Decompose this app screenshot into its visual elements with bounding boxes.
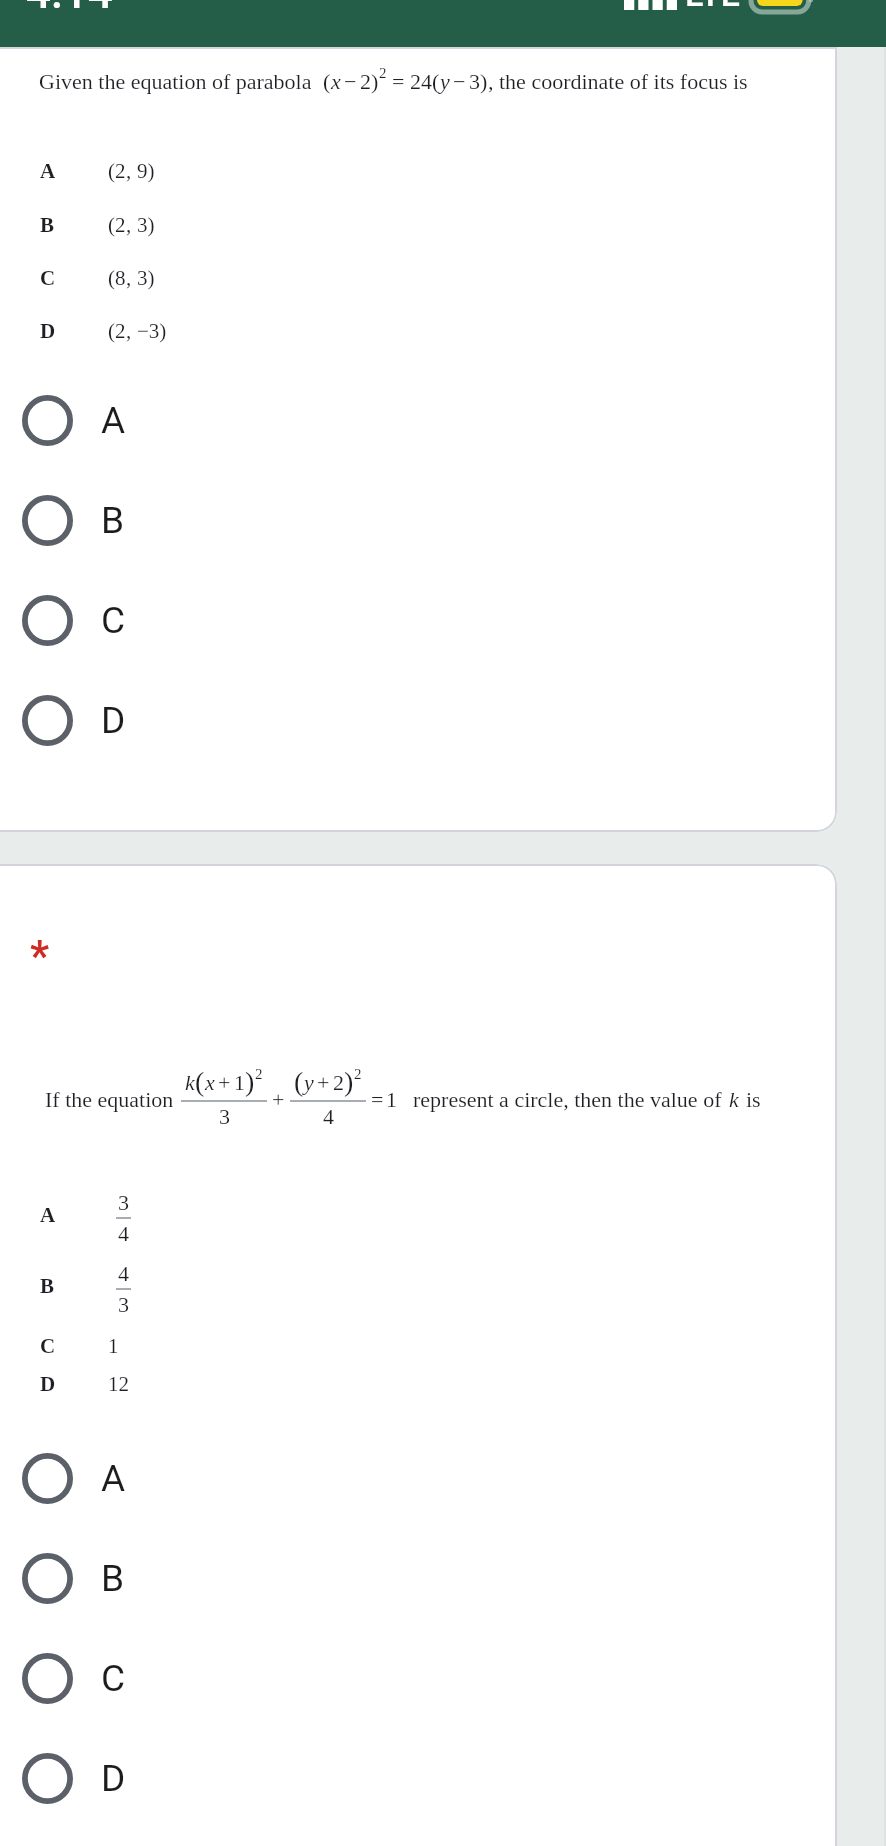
button[interactable]	[0, 250, 837, 300]
button[interactable]: B	[0, 1542, 837, 1614]
staticText: (2	[108, 159, 126, 182]
staticText: (2	[108, 213, 126, 236]
staticText: 4	[118, 1221, 129, 1245]
staticText: A	[101, 1457, 126, 1500]
staticText: B	[101, 499, 125, 542]
button[interactable]: C	[0, 1642, 837, 1714]
staticText: D	[40, 319, 56, 342]
staticText: +	[317, 1070, 330, 1094]
staticText: If the equation	[45, 1087, 174, 1111]
staticText: D	[101, 1757, 126, 1800]
staticText: 2)	[360, 69, 379, 93]
staticText: Given the equation of parabola	[39, 69, 312, 93]
staticText: 1	[386, 1087, 397, 1111]
staticText: represent a circle, then the value of	[413, 1087, 722, 1111]
staticText: 4:14	[26, 0, 113, 14]
button[interactable]: C	[0, 584, 837, 656]
staticText: 3	[219, 1104, 230, 1128]
staticText: x	[331, 69, 341, 93]
staticText: A	[40, 159, 56, 182]
staticText: 24(	[410, 69, 440, 93]
staticText: ,	[126, 213, 132, 236]
staticText: ,	[126, 319, 132, 342]
staticText: −	[344, 69, 357, 93]
staticText: C	[40, 266, 56, 289]
staticText: 4	[323, 1104, 334, 1128]
staticText: +	[218, 1070, 231, 1094]
staticText: 3	[118, 1292, 129, 1316]
staticText: B	[40, 213, 55, 236]
staticText: *	[30, 931, 50, 980]
staticText: D	[101, 699, 126, 742]
staticText: 1	[234, 1070, 245, 1094]
staticText: y	[440, 69, 450, 93]
staticText: 9)	[137, 159, 155, 182]
button[interactable]: D	[0, 684, 837, 756]
staticText: A	[40, 1203, 56, 1226]
staticText: (	[294, 1066, 304, 1097]
staticText: )	[344, 1066, 354, 1097]
staticText: 1	[108, 1334, 119, 1357]
staticText: =	[392, 69, 405, 93]
button[interactable]	[0, 143, 837, 193]
staticText: ,	[126, 266, 132, 289]
staticText: (8	[108, 266, 126, 289]
staticText: k	[185, 1070, 195, 1094]
button[interactable]: A	[0, 1442, 837, 1514]
staticText: 4	[118, 1261, 129, 1285]
button[interactable]	[0, 1356, 837, 1406]
staticText: 3)	[137, 213, 155, 236]
staticText: , the coordinate of its focus is	[488, 69, 748, 93]
button[interactable]: D	[0, 1742, 837, 1814]
staticText: 3	[118, 1190, 129, 1214]
button[interactable]	[0, 303, 837, 353]
staticText: 2	[333, 1070, 344, 1094]
staticText: B	[40, 1274, 55, 1297]
staticText: =	[371, 1087, 384, 1111]
staticText: )	[245, 1066, 255, 1097]
staticText: C	[40, 1334, 56, 1357]
staticText: y	[304, 1070, 314, 1094]
button[interactable]	[0, 197, 837, 247]
staticText: C	[101, 1657, 126, 1700]
staticText: B	[101, 1557, 125, 1600]
staticText: is	[746, 1087, 761, 1111]
staticText: −3)	[137, 319, 167, 342]
staticText: 2	[354, 1066, 362, 1083]
button[interactable]: B	[0, 484, 837, 556]
staticText: +	[272, 1087, 285, 1111]
staticText: −	[453, 69, 466, 93]
staticText: 3)	[137, 266, 155, 289]
staticText: 2	[379, 65, 387, 82]
staticText: ,	[126, 159, 132, 182]
staticText: (	[195, 1066, 205, 1097]
staticText: D	[40, 1372, 56, 1395]
staticText: (2	[108, 319, 126, 342]
staticText: (	[323, 69, 331, 93]
staticText: x	[205, 1070, 215, 1094]
staticText: k	[729, 1087, 739, 1111]
staticText: 12	[108, 1372, 129, 1395]
staticText: 2	[255, 1066, 263, 1083]
staticText: A	[101, 399, 126, 442]
button[interactable]: A	[0, 384, 837, 456]
button[interactable]	[0, 1318, 837, 1368]
staticText: 3)	[469, 69, 488, 93]
staticText: LTE	[685, 0, 740, 14]
staticText: C	[101, 599, 126, 642]
